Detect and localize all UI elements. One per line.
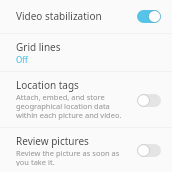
staticText: Location tags (16, 78, 79, 92)
staticText: Review the picture as soon as you take i… (16, 148, 129, 166)
staticText: Grid lines (16, 40, 61, 54)
button[interactable]: Video stabilization (0, 0, 172, 33)
button[interactable]: Location tags (0, 72, 172, 127)
button[interactable]: Grid lines (0, 34, 172, 71)
button[interactable]: Toggle Review pictures (133, 138, 165, 162)
button[interactable]: Toggle Video stabilization (133, 4, 165, 28)
staticText: Attach, embed, and store geographical lo… (16, 92, 129, 121)
button[interactable]: Review pictures (0, 128, 172, 172)
staticText: Video stabilization (16, 9, 102, 23)
button[interactable]: Toggle Location tags (133, 88, 165, 112)
staticText: Off (16, 54, 28, 65)
staticText: Review pictures (16, 134, 89, 148)
